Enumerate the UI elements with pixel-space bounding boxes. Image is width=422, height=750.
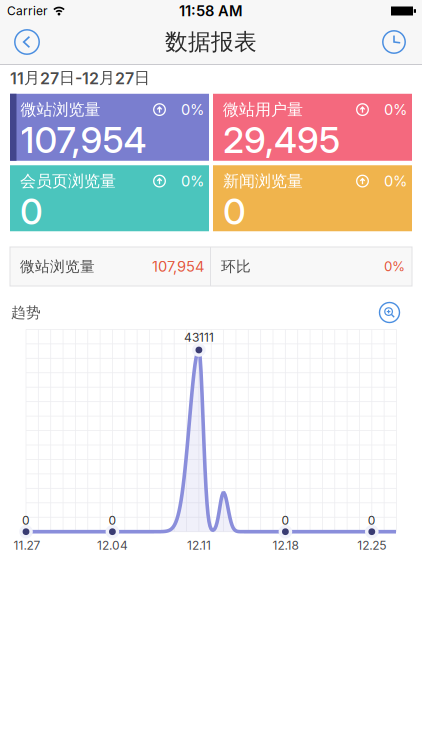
staticText: 0	[108, 513, 116, 528]
staticText: 0	[223, 190, 246, 233]
staticText: 12.04	[97, 538, 128, 553]
staticText: 12.25	[357, 538, 386, 553]
staticText: 0%	[181, 101, 204, 118]
staticText: 0	[281, 513, 289, 528]
staticText: 11.27	[13, 538, 40, 553]
staticText: 107,954	[20, 119, 146, 161]
staticText: 0	[20, 190, 43, 233]
staticText: 0%	[384, 172, 407, 190]
staticText: 会员页浏览量	[20, 171, 116, 191]
staticText: 新闻浏览量	[223, 171, 303, 191]
staticText: 0	[368, 513, 376, 528]
staticText: 0%	[384, 101, 407, 118]
staticText: 数据报表	[165, 28, 257, 56]
staticText: 107,954	[152, 258, 204, 275]
staticText: 29,495	[223, 119, 340, 161]
staticText: 43111	[184, 330, 214, 345]
staticText: 12.18	[272, 538, 298, 553]
staticText: 微站浏览量	[20, 257, 95, 275]
staticText: 11:58 AM	[179, 2, 243, 20]
staticText: 0	[22, 513, 30, 528]
staticText: Carrier	[7, 4, 48, 18]
staticText: 趋势	[11, 303, 41, 321]
staticText: 12.11	[187, 538, 211, 553]
staticText: 微站用户量	[223, 100, 303, 119]
staticText: 环比	[221, 257, 251, 275]
staticText: 11月27日-12月27日	[10, 68, 150, 88]
staticText: 微站浏览量	[20, 100, 100, 119]
staticText: 0%	[181, 172, 204, 190]
staticText: 0%	[384, 259, 405, 274]
